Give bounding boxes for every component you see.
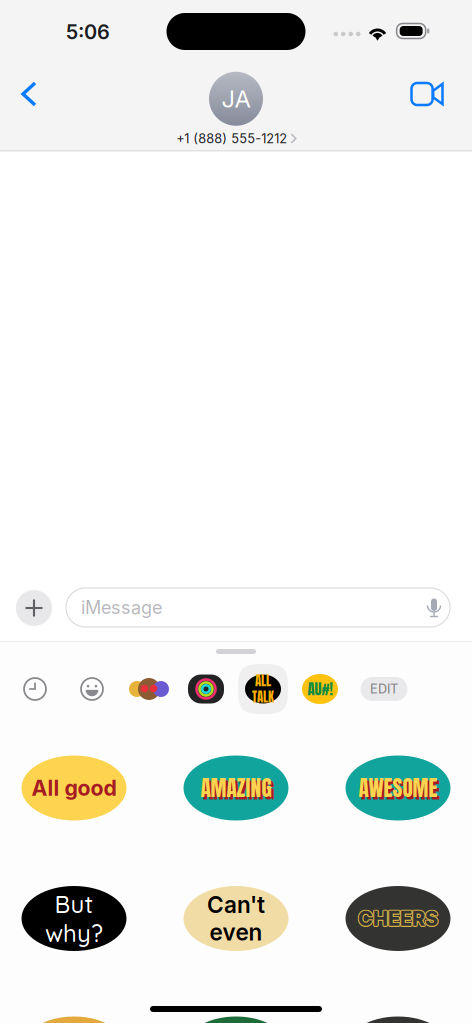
button[interactable]: Memoji stickers: [124, 667, 174, 711]
staticText: CHEERS: [359, 906, 439, 930]
staticText: +1 (888) 555-1212: [176, 131, 287, 146]
button[interactable]: But: [21, 886, 126, 951]
staticText: CHEERS: [359, 906, 439, 931]
button[interactable]: iMessage text field: [66, 588, 450, 627]
staticText: CHEERS: [358, 907, 438, 932]
staticText: why?: [45, 918, 103, 948]
staticText: 5:06: [66, 20, 110, 44]
staticText: EDIT: [370, 681, 398, 697]
staticText: ALL: [255, 671, 271, 690]
button[interactable]: CHEERS: [345, 886, 450, 951]
button[interactable]: Can't: [183, 886, 288, 951]
button[interactable]: [21, 1016, 126, 1023]
button[interactable]: Digital Touch: [181, 667, 231, 711]
staticText: AWESOME: [361, 774, 440, 806]
button[interactable]: EDIT: [360, 677, 407, 701]
staticText: TALK: [252, 687, 274, 707]
staticText: AMAZING: [200, 772, 271, 804]
staticText: AU#!: [307, 678, 332, 700]
button[interactable]: AMAZING: [183, 755, 288, 820]
button[interactable]: Contact info: [126, 67, 346, 151]
staticText: JA: [221, 84, 250, 113]
staticText: CHEERS: [359, 907, 439, 931]
staticText: All good: [31, 775, 116, 801]
button[interactable]: [345, 1016, 450, 1023]
staticText: CHEERS: [357, 907, 437, 931]
staticText: iMessage: [81, 597, 162, 618]
staticText: CHEERS: [358, 906, 438, 931]
staticText: AMAZING: [203, 774, 274, 806]
button[interactable]: AU stickers: [295, 667, 345, 711]
staticText: CHEERS: [357, 906, 437, 930]
button[interactable]: Recents: [10, 667, 60, 711]
button[interactable]: AWESOME: [345, 755, 450, 820]
button[interactable]: All Talk stickers: [238, 664, 288, 714]
button[interactable]: FaceTime video call: [398, 66, 456, 122]
staticText: But: [54, 889, 93, 919]
staticText: even: [209, 918, 262, 946]
staticText: AWESOME: [358, 772, 437, 804]
button[interactable]: [183, 1016, 288, 1023]
button[interactable]: Back: [5, 66, 53, 122]
staticText: CHEERS: [358, 905, 438, 929]
button[interactable]: Apps: [12, 586, 56, 630]
button[interactable]: All good: [21, 755, 126, 820]
staticText: Can't: [207, 891, 265, 918]
staticText: CHEERS: [357, 906, 437, 931]
button[interactable]: Emoji: [67, 667, 117, 711]
